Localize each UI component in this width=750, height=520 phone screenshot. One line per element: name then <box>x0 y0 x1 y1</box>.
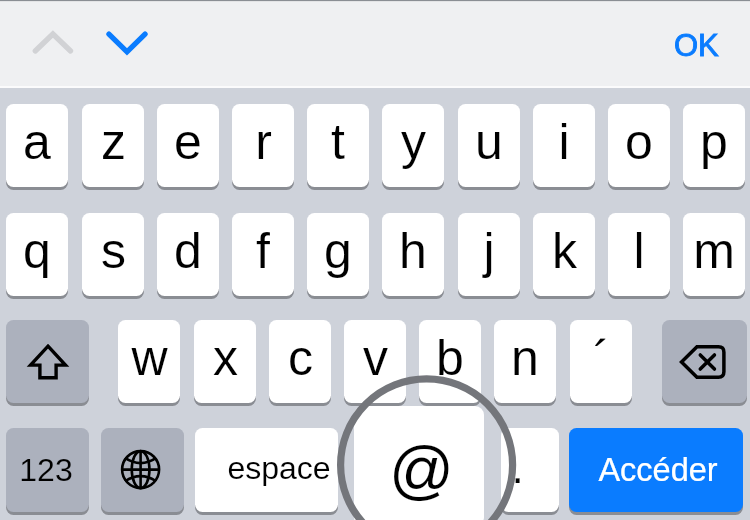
staticText: q <box>23 223 51 279</box>
button[interactable]: Accéder <box>569 428 743 512</box>
button[interactable]: d <box>157 213 219 296</box>
button[interactable]: u <box>458 104 520 187</box>
staticText: y <box>401 114 426 170</box>
button[interactable]: e <box>157 104 219 187</box>
button[interactable]: c <box>269 320 331 403</box>
button[interactable]: z <box>82 104 144 187</box>
button[interactable]: y <box>382 104 444 187</box>
button[interactable]: Previous field <box>18 12 88 74</box>
button[interactable]: r <box>232 104 294 187</box>
button[interactable]: ´ <box>570 320 632 403</box>
button[interactable]: q <box>6 213 68 296</box>
button[interactable]: OK <box>651 15 741 75</box>
button[interactable]: l <box>608 213 670 296</box>
button[interactable]: Change keyboard <box>101 428 184 512</box>
staticText: t <box>331 114 345 170</box>
staticText: Accéder <box>598 452 718 488</box>
staticText: e <box>174 114 202 170</box>
staticText: v <box>363 330 388 386</box>
staticText: m <box>693 223 735 279</box>
button[interactable]: k <box>533 213 595 296</box>
button[interactable]: j <box>458 213 520 296</box>
staticText: o <box>625 114 653 170</box>
button[interactable]: . <box>501 428 559 512</box>
staticText: espace <box>227 450 331 486</box>
staticText: g <box>324 223 352 279</box>
staticText: a <box>23 114 51 170</box>
staticText: @ <box>389 434 454 506</box>
staticText: z <box>101 114 126 170</box>
staticText: u <box>475 114 503 170</box>
staticText: . <box>511 443 524 492</box>
staticText: b <box>436 330 464 386</box>
button[interactable]: x <box>194 320 256 403</box>
staticText: p <box>700 114 728 170</box>
staticText: i <box>558 114 570 170</box>
staticText: l <box>633 223 645 279</box>
staticText: x <box>213 330 238 386</box>
staticText: k <box>552 223 577 279</box>
button[interactable]: g <box>307 213 369 296</box>
staticText: r <box>255 114 272 170</box>
staticText: j <box>483 223 495 279</box>
button[interactable]: p <box>683 104 745 187</box>
button[interactable]: n <box>494 320 556 403</box>
button[interactable]: a <box>6 104 68 187</box>
button[interactable]: s <box>82 213 144 296</box>
staticText: c <box>288 330 313 386</box>
button[interactable]: f <box>232 213 294 296</box>
button[interactable]: i <box>533 104 595 187</box>
button[interactable]: Shift <box>6 320 89 403</box>
staticText: d <box>174 223 202 279</box>
button[interactable]: w <box>118 320 180 403</box>
staticText: OK <box>674 28 719 63</box>
staticText: n <box>511 330 539 386</box>
button[interactable]: o <box>608 104 670 187</box>
staticText: f <box>256 223 270 279</box>
staticText: w <box>131 330 168 386</box>
button[interactable]: Next field <box>92 12 162 74</box>
button[interactable]: t <box>307 104 369 187</box>
button[interactable]: v <box>344 320 406 403</box>
button[interactable]: m <box>683 213 745 296</box>
staticText: 123 <box>19 452 73 488</box>
staticText: h <box>399 223 427 279</box>
staticText: OK <box>674 28 719 63</box>
staticText: ´ <box>593 330 610 386</box>
button[interactable]: @ <box>354 406 484 520</box>
button[interactable]: h <box>382 213 444 296</box>
button[interactable]: 123 <box>6 428 89 512</box>
button[interactable]: espace <box>195 428 338 512</box>
button[interactable]: Backspace <box>662 320 747 403</box>
staticText: s <box>101 223 126 279</box>
button[interactable]: b <box>419 320 481 403</box>
